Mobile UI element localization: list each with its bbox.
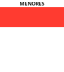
staticText: MENORES xyxy=(19,0,44,7)
